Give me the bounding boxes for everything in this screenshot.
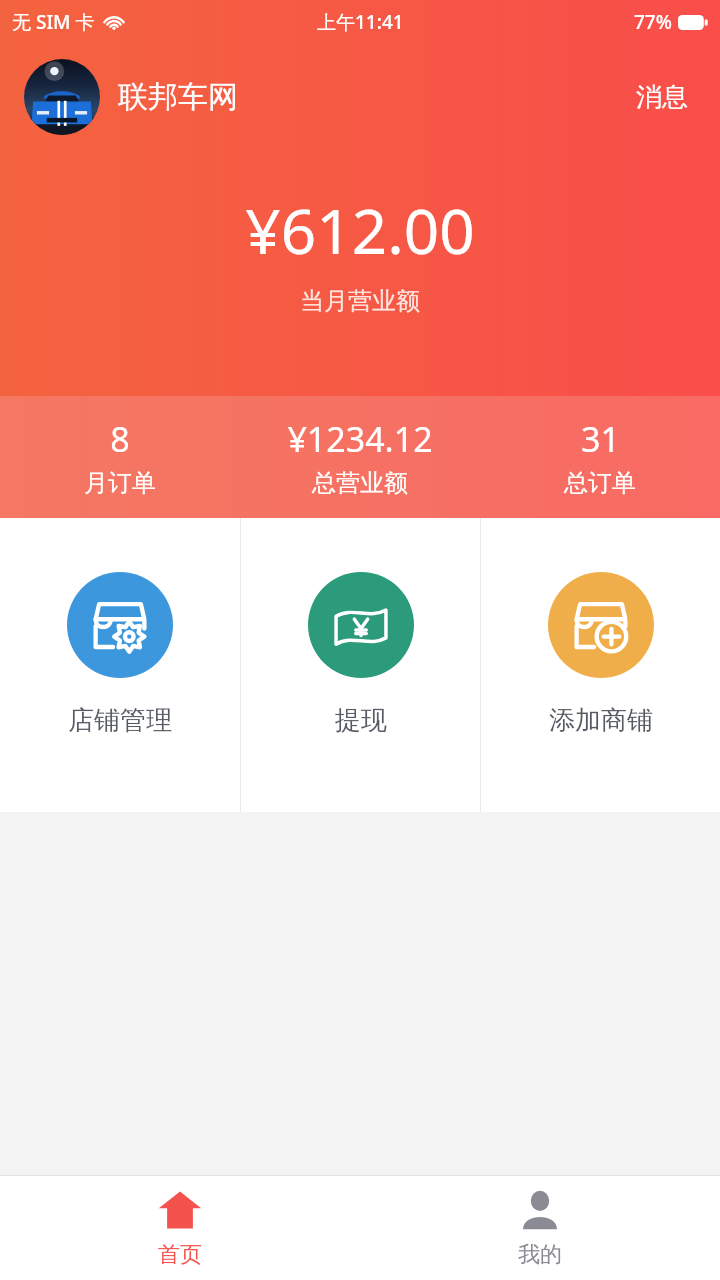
staticText: 77% [634, 9, 672, 35]
staticText: 消息 [636, 81, 688, 114]
staticText: 我的 [518, 1241, 562, 1269]
button[interactable]: 8 [0, 416, 240, 498]
staticText: ¥1234.12 [287, 416, 433, 462]
staticText: ¥612.00 [245, 188, 475, 272]
button[interactable]: 提现 [241, 518, 480, 812]
staticText: 店铺管理 [68, 704, 172, 737]
button[interactable]: 添加商铺 [481, 518, 720, 812]
staticText: 月订单 [84, 468, 156, 498]
staticText: 添加商铺 [549, 704, 653, 737]
staticText: 提现 [335, 704, 387, 737]
button[interactable]: 消息 [628, 75, 696, 120]
staticText: 8 [110, 416, 130, 462]
button[interactable]: 31 [480, 416, 720, 498]
staticText: 上午11:41 [317, 9, 404, 35]
staticText: 首页 [158, 1241, 202, 1269]
button[interactable]: 用户头像 [24, 59, 100, 135]
staticText: 联邦车网 [118, 78, 238, 116]
button[interactable]: 首页 [0, 1176, 360, 1280]
staticText: 总订单 [564, 468, 636, 498]
staticText: 31 [581, 416, 620, 462]
button[interactable]: 店铺管理 [0, 518, 240, 812]
button[interactable]: ¥1234.12 [240, 416, 480, 498]
staticText: 当月营业额 [300, 286, 420, 316]
staticText: 总营业额 [312, 468, 408, 498]
button[interactable]: 我的 [360, 1176, 720, 1280]
staticText: 无 SIM 卡 [12, 9, 95, 35]
